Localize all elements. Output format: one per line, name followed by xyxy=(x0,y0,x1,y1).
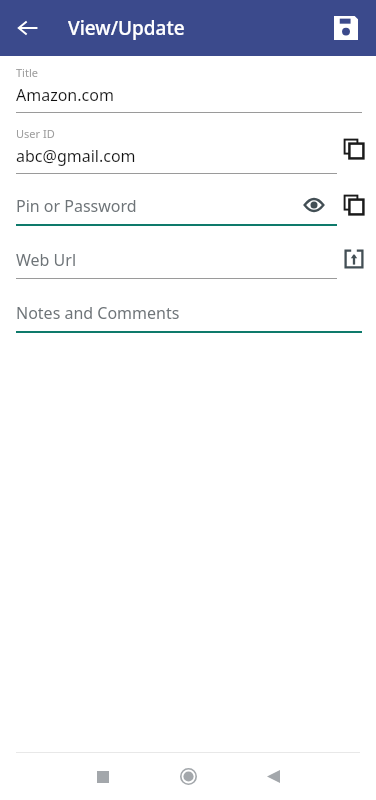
button[interactable]: Copy xyxy=(339,190,369,220)
button[interactable]: Back xyxy=(6,6,50,50)
button[interactable]: Save xyxy=(324,6,368,50)
staticText: Pin or Password xyxy=(16,195,137,217)
button[interactable]: Show password xyxy=(299,190,329,220)
button[interactable]: User ID xyxy=(0,126,376,174)
staticText: User ID xyxy=(16,126,55,141)
button[interactable]: Web Url xyxy=(0,240,376,279)
staticText: Title xyxy=(16,65,38,80)
button[interactable]: Back xyxy=(249,753,297,800)
staticText: View/Update xyxy=(68,15,185,41)
button[interactable]: Title xyxy=(0,65,376,113)
staticText: Amazon.com xyxy=(16,84,114,106)
button[interactable]: Pin or Password xyxy=(0,186,376,226)
button[interactable]: Copy xyxy=(339,134,369,164)
staticText: abc@gmail.com xyxy=(16,145,136,167)
staticText: Web Url xyxy=(16,249,77,271)
button[interactable]: Recents xyxy=(79,753,127,800)
staticText: Notes and Comments xyxy=(16,302,180,324)
button[interactable]: Open web URL xyxy=(339,244,369,274)
button[interactable]: Notes and Comments xyxy=(0,293,376,333)
button[interactable]: Home xyxy=(164,753,212,800)
